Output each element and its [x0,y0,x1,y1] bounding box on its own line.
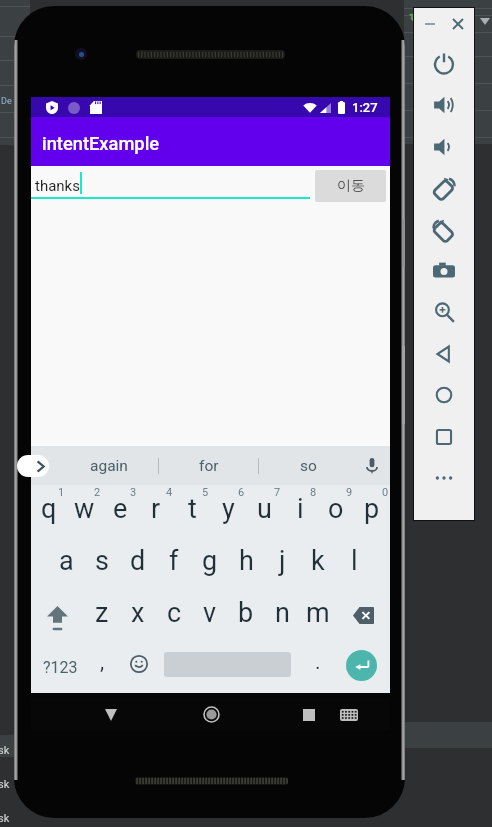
button[interactable]: a [48,537,84,589]
button[interactable]: Screenshot [429,256,459,286]
staticText: p [364,493,380,525]
button[interactable]: 3 [102,485,138,537]
button[interactable]: thanks [31,166,310,208]
staticText: 3 [130,486,137,499]
staticText: sk [0,812,10,825]
button[interactable]: n [264,589,300,641]
button[interactable]: 7 [246,485,282,537]
button[interactable]: s [84,537,120,589]
button[interactable]: Rotate right [429,215,459,245]
staticText: d [130,545,146,577]
button[interactable]: intentExample [31,117,390,166]
button[interactable]: 9 [318,485,354,537]
button[interactable]: 0 [354,485,390,537]
staticText: . [315,650,321,675]
staticText: k [311,545,325,577]
button[interactable]: Emoji [120,641,156,693]
button[interactable]: m [300,589,336,641]
staticText: h [239,545,254,577]
button[interactable]: c [156,589,192,641]
button[interactable]: Zoom [429,297,459,327]
staticText: 4 [166,486,173,499]
staticText: j [279,545,286,577]
button[interactable]: d [120,537,156,589]
staticText: 이동 [337,177,365,195]
staticText: ?123 [43,658,78,677]
staticText: a [59,545,74,577]
button[interactable]: Extended controls [429,463,459,493]
button[interactable]: k [300,537,336,589]
staticText: again [90,457,128,475]
staticText: l [351,545,358,577]
button[interactable]: f [156,537,192,589]
button[interactable]: Backspace [336,589,390,641]
button[interactable]: 1 [31,485,66,537]
button[interactable]: Volume up [429,90,459,120]
staticText: sk [0,778,10,791]
staticText: r [151,493,161,525]
button[interactable]: Shift [31,589,84,641]
staticText: m [306,597,330,629]
staticText: 0 [382,486,389,499]
button[interactable]: Home [429,380,459,410]
staticText: g [202,545,218,577]
staticText: 1:27 [352,100,378,115]
staticText: , [100,650,105,675]
button[interactable]: Overview [429,422,459,452]
button[interactable]: g [192,537,228,589]
staticText: b [238,597,254,629]
button[interactable]: so [259,446,358,485]
button[interactable]: h [228,537,264,589]
button[interactable]: , [84,641,120,693]
button[interactable]: Back [92,699,130,730]
staticText: 7 [274,486,281,499]
button[interactable]: Recents [290,699,328,730]
button[interactable]: Voice input [359,453,385,479]
staticText: i [297,493,304,525]
staticText: 6 [238,486,245,499]
button[interactable]: Close [448,14,468,34]
staticText: f [169,545,179,577]
button[interactable]: Enter [346,650,377,681]
staticText: v [203,597,217,629]
staticText: t [188,493,197,525]
button[interactable]: Expand suggestions [17,455,49,477]
staticText: sk [0,744,10,757]
staticText: 2 [94,486,101,499]
button[interactable]: Power [429,49,459,79]
staticText: for [199,457,219,475]
staticText: thanks [35,177,80,195]
button[interactable]: 5 [174,485,210,537]
button[interactable]: j [264,537,300,589]
button[interactable]: again [60,446,158,485]
button[interactable]: . [300,641,336,693]
button[interactable]: x [120,589,156,641]
staticText: s [95,545,109,577]
button[interactable]: 8 [282,485,318,537]
button[interactable]: for [159,446,258,485]
button[interactable]: 2 [66,485,102,537]
staticText: z [95,597,109,629]
staticText: q [41,493,57,525]
staticText: w [74,493,95,525]
button[interactable]: ?123 [31,641,84,693]
button[interactable]: b [228,589,264,641]
button[interactable]: 이동 [315,170,386,202]
staticText: u [257,493,272,525]
button[interactable]: Switch keyboard [335,701,363,729]
button[interactable]: 6 [210,485,246,537]
button[interactable]: Back [429,339,459,369]
button[interactable]: Home [192,699,230,730]
button[interactable]: Rotate left [429,173,459,203]
staticText: De [1,96,12,107]
staticText: 9 [346,486,353,499]
staticText: intentExample [42,133,160,154]
button[interactable]: l [336,537,372,589]
staticText: x [131,597,145,629]
button[interactable]: 4 [138,485,174,537]
button[interactable]: Volume down [429,132,459,162]
button[interactable]: v [192,589,228,641]
button[interactable]: Minimize [420,14,440,34]
button[interactable]: z [84,589,120,641]
